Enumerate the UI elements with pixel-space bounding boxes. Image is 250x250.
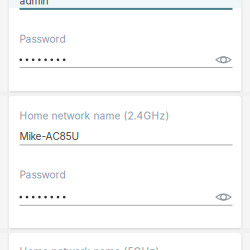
staticText: Home network name (2.4GHz) [19,110,169,122]
staticText: Password [19,169,65,181]
button[interactable]: Show password [214,192,232,203]
button[interactable]: Show password [214,54,232,65]
staticText: admin [19,0,48,7]
staticText: Mike-AC85U [19,130,79,142]
staticText: Password [19,33,65,45]
staticText: Home network name (5GHz) [19,245,159,250]
